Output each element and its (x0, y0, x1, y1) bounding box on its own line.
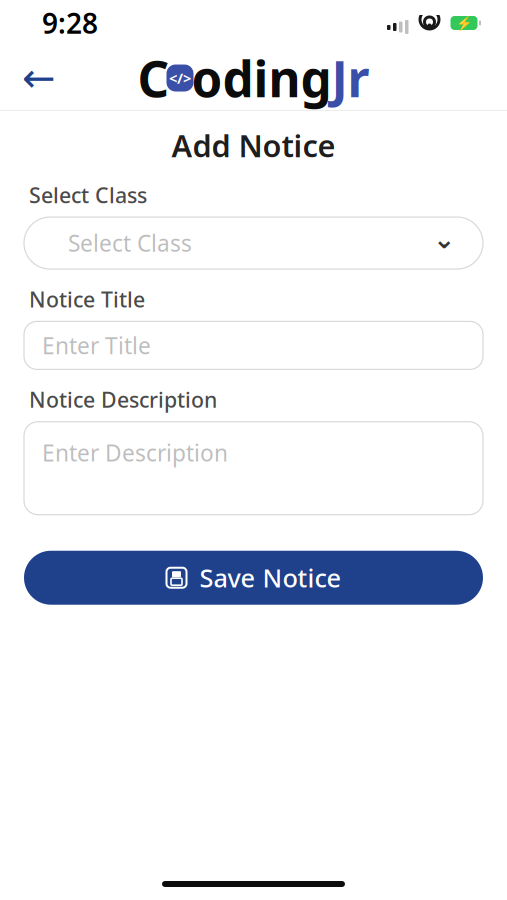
staticText: Enter Title (42, 330, 151, 360)
staticText: Select Class (68, 228, 192, 258)
staticText: oding (191, 45, 331, 111)
staticText: Select Class (29, 181, 147, 209)
button[interactable]: Save Notice (24, 551, 483, 605)
staticText: ⚡ (455, 15, 472, 31)
staticText: Notice Title (29, 285, 145, 313)
button[interactable]: Enter Title (24, 321, 483, 369)
staticText: Enter Description (42, 438, 228, 468)
staticText: ← (22, 55, 56, 101)
staticText: </> (169, 68, 191, 88)
button[interactable]: Back (12, 51, 66, 105)
staticText: Add Notice (171, 125, 335, 166)
button[interactable]: Enter Description (24, 422, 483, 515)
staticText: Save Notice (199, 561, 341, 594)
staticText: ⌄ (433, 224, 455, 254)
button[interactable]: Select Class (24, 217, 483, 269)
staticText: 9:28 (42, 4, 98, 42)
staticText: C (137, 45, 169, 111)
staticText: Notice Description (29, 385, 217, 414)
staticText: Jr (331, 45, 369, 111)
